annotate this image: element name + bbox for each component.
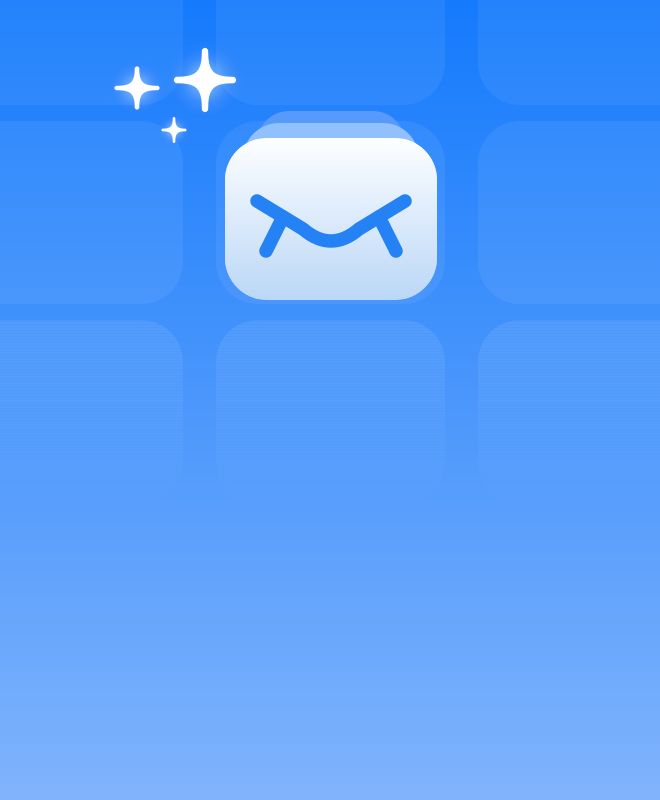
button[interactable]: Mail — [221, 119, 441, 319]
